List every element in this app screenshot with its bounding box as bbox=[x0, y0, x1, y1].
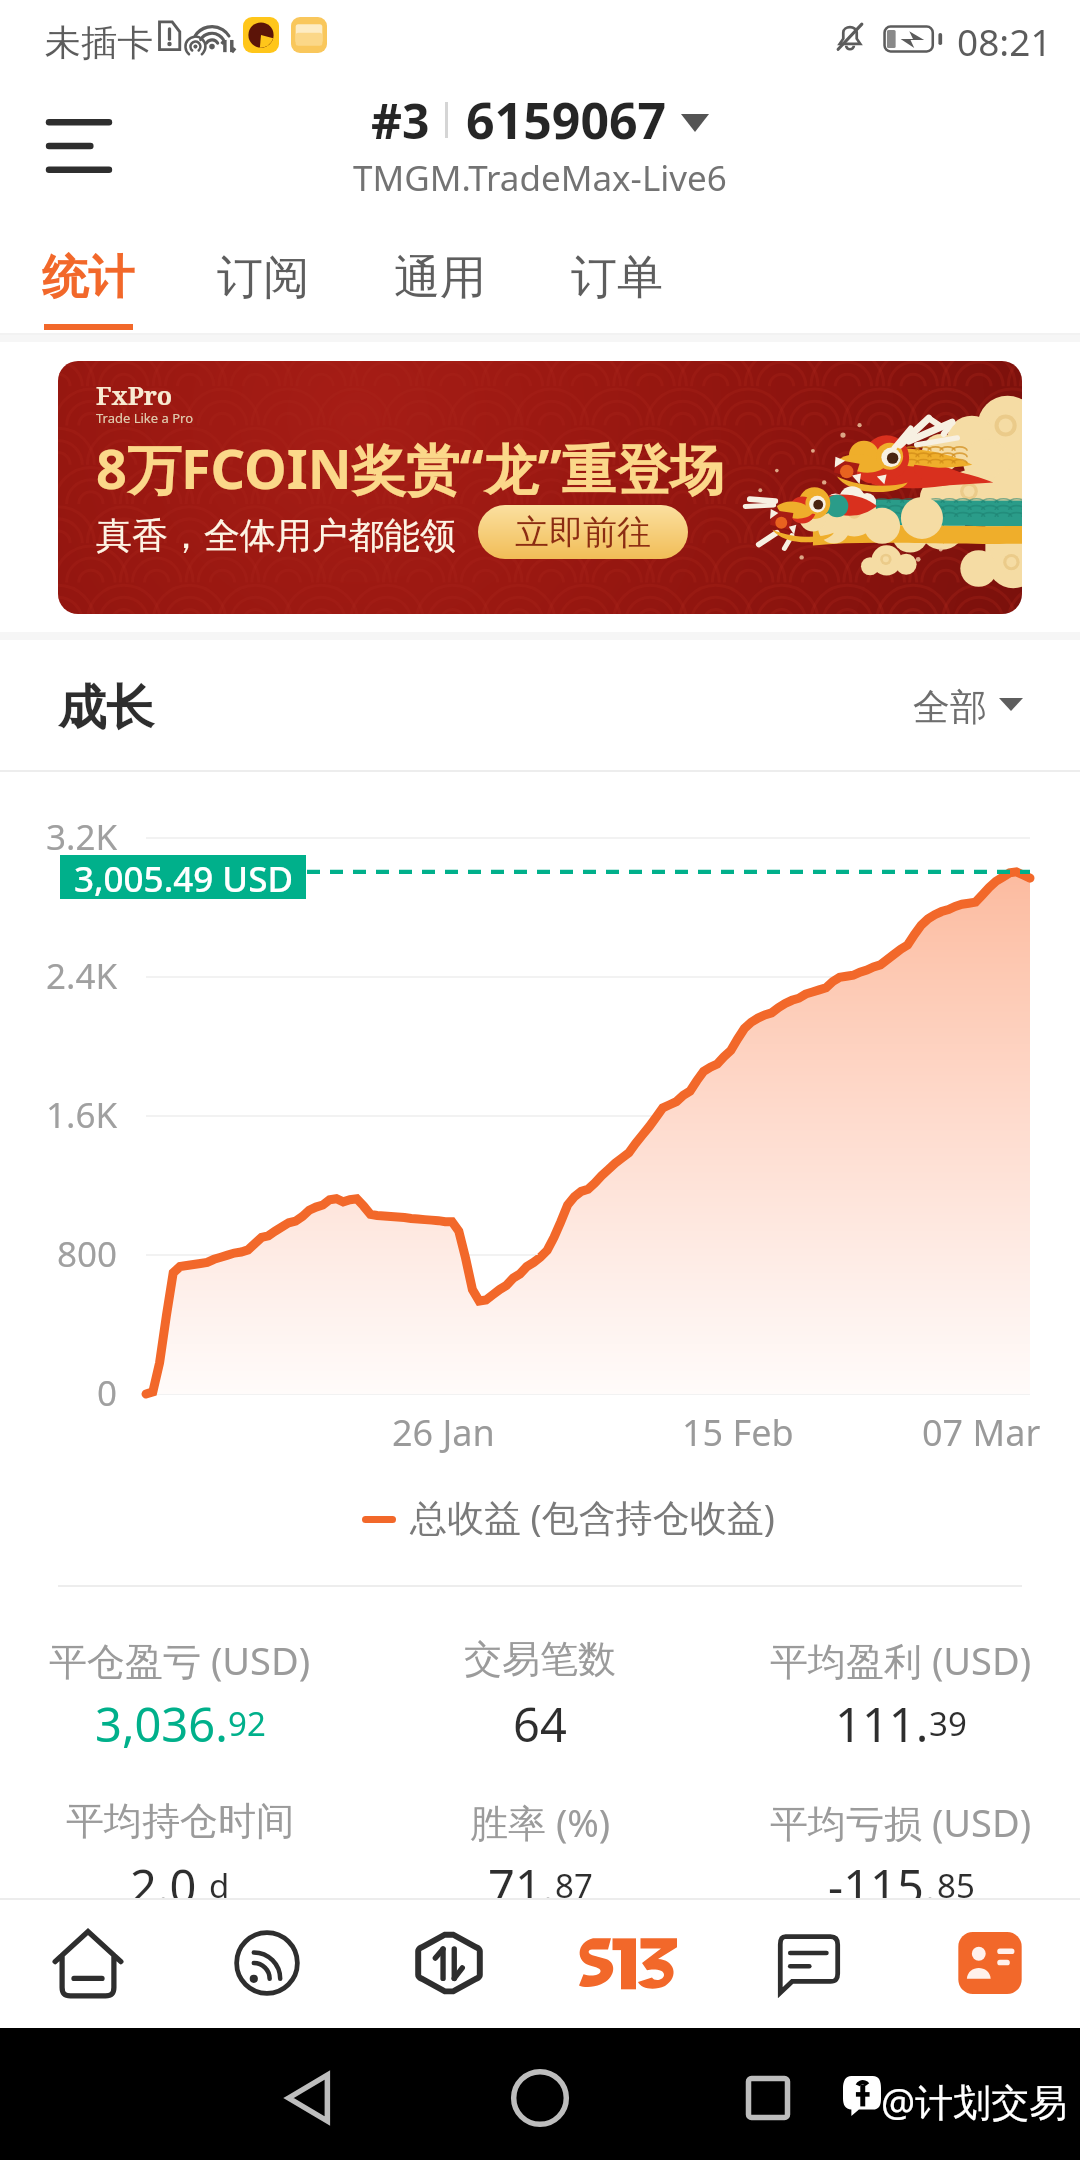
staticText: 800 bbox=[57, 1230, 118, 1278]
staticText: 3.2K bbox=[46, 813, 118, 861]
staticText: 64 bbox=[513, 1692, 567, 1748]
button[interactable]: #3 bbox=[353, 86, 727, 202]
staticText: 交易笔数 bbox=[464, 1635, 616, 1683]
staticText: 立即前往 bbox=[515, 511, 651, 554]
button[interactable]: Menu bbox=[19, 86, 139, 202]
button[interactable]: Recents bbox=[698, 2028, 838, 2160]
button[interactable]: Signals bbox=[193, 1898, 341, 2028]
button[interactable]: 订阅 bbox=[175, 228, 351, 335]
staticText: 71. bbox=[488, 1854, 555, 1910]
staticText: 2.4K bbox=[46, 952, 118, 1000]
button[interactable]: Profile bbox=[916, 1898, 1064, 2028]
button[interactable]: 立即前往 bbox=[478, 505, 688, 559]
staticText: 平仓盈亏 (USD) bbox=[49, 1634, 311, 1684]
staticText: 08:21 bbox=[957, 16, 1052, 66]
staticText: 通用 bbox=[394, 249, 486, 307]
button[interactable]: Trade bbox=[375, 1898, 523, 2028]
staticText: -115. bbox=[828, 1854, 937, 1910]
button[interactable]: S13 bbox=[554, 1898, 702, 2028]
button[interactable]: FxPro promotion banner bbox=[58, 361, 1022, 614]
staticText: 平均持仓时间 bbox=[66, 1797, 294, 1845]
button[interactable]: 通用 bbox=[352, 228, 528, 335]
staticText: d bbox=[209, 1863, 230, 1908]
staticText: 全部 bbox=[913, 684, 987, 731]
staticText: 15 Feb bbox=[682, 1408, 794, 1457]
staticText: 真香，全体用户都能领 bbox=[96, 513, 456, 558]
button[interactable]: Back bbox=[238, 2028, 378, 2160]
staticText: TMGM.TradeMax-Live6 bbox=[353, 154, 727, 202]
staticText: 未插卡 bbox=[45, 20, 153, 65]
staticText: 平均盈利 (USD) bbox=[770, 1634, 1032, 1684]
staticText: 成长 bbox=[58, 678, 154, 738]
staticText: 胜率 (%) bbox=[470, 1796, 611, 1846]
staticText: 总收益 (包含持仓收益) bbox=[410, 1491, 775, 1542]
staticText: 92 bbox=[228, 1701, 266, 1746]
staticText: 平均亏损 (USD) bbox=[770, 1796, 1032, 1846]
button[interactable]: Home bbox=[14, 1898, 162, 2028]
button[interactable]: Home bbox=[470, 2028, 610, 2160]
staticText: @计划交易 bbox=[881, 2075, 1068, 2127]
staticText: 6159067 bbox=[466, 86, 667, 154]
staticText: 2.0 bbox=[130, 1854, 209, 1910]
button[interactable]: 全部 bbox=[900, 672, 1035, 734]
button[interactable]: Messages bbox=[734, 1898, 882, 2028]
staticText: 8万FCOIN奖赏“龙”重登场 bbox=[96, 431, 724, 505]
staticText: 订阅 bbox=[217, 249, 309, 307]
staticText: 26 Jan bbox=[392, 1408, 495, 1457]
staticText: 0 bbox=[97, 1369, 118, 1417]
staticText: FxPro bbox=[96, 378, 173, 412]
staticText: 统计 bbox=[42, 249, 134, 307]
staticText: 07 Mar bbox=[922, 1408, 1041, 1457]
staticText: 85 bbox=[937, 1863, 975, 1908]
staticText: 3,005.49 USD bbox=[74, 855, 293, 899]
staticText: 3,036. bbox=[95, 1692, 228, 1748]
staticText: 111. bbox=[835, 1692, 929, 1748]
button[interactable]: 订单 bbox=[529, 228, 705, 335]
staticText: 39 bbox=[929, 1701, 967, 1746]
staticText: 87 bbox=[555, 1863, 593, 1908]
staticText: #3 bbox=[371, 88, 430, 153]
button[interactable]: 统计 bbox=[0, 228, 176, 335]
staticText: 订单 bbox=[571, 249, 663, 307]
staticText: Trade Like a Pro bbox=[96, 409, 194, 427]
staticText: 1.6K bbox=[46, 1091, 118, 1139]
